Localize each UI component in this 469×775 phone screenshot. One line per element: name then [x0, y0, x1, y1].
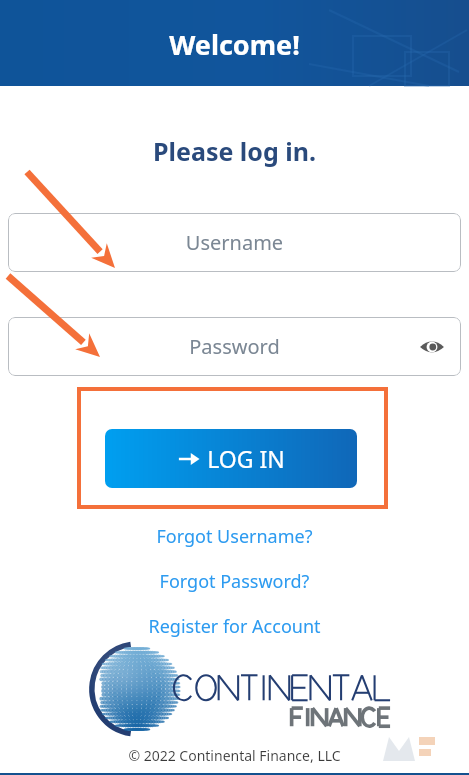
button[interactable]: Forgot Password?: [0, 566, 469, 596]
staticText: Register for Account: [0, 614, 469, 639]
button[interactable]: Register for Account: [0, 611, 469, 641]
staticText: Username: [8, 229, 461, 256]
staticText: LOG IN: [207, 443, 285, 474]
button[interactable]: Password: [8, 317, 461, 376]
staticText: Password: [8, 333, 461, 360]
button[interactable]: LOG IN: [105, 429, 357, 488]
staticText: Welcome!: [169, 26, 300, 63]
staticText: Forgot Username?: [0, 524, 469, 549]
button[interactable]: Username: [8, 213, 461, 272]
button[interactable]: Show password: [415, 330, 449, 364]
staticText: Please log in.: [0, 134, 469, 168]
staticText: © 2022 Continental Finance, LLC: [0, 746, 469, 765]
button[interactable]: Forgot Username?: [0, 521, 469, 551]
staticText: Forgot Password?: [0, 569, 469, 594]
